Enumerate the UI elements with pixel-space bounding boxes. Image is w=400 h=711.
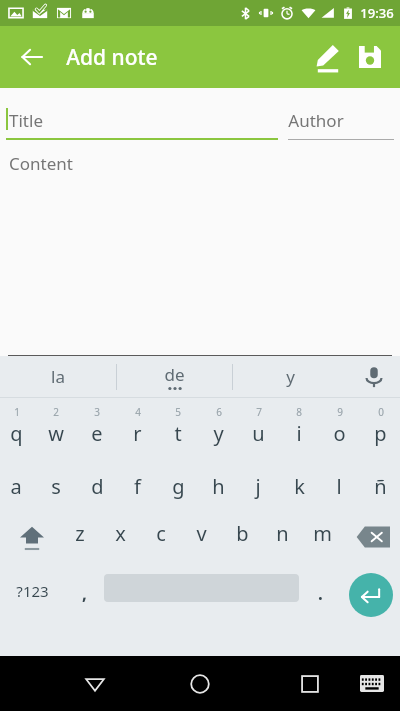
button[interactable]: Home — [175, 659, 225, 709]
staticText: o — [333, 420, 346, 447]
button[interactable]: Voice input — [348, 356, 400, 397]
staticText: ?123 — [16, 581, 49, 601]
staticText: x — [115, 520, 126, 547]
staticText: w — [48, 420, 64, 447]
staticText: t — [174, 420, 182, 447]
staticText: c — [156, 520, 166, 547]
button[interactable]: j — [238, 453, 278, 508]
button[interactable]: 0 — [360, 398, 400, 453]
staticText: z — [75, 520, 85, 547]
staticText: 3 — [94, 405, 100, 419]
button[interactable]: c — [141, 508, 181, 566]
staticText: , — [82, 582, 87, 605]
button[interactable]: Recents — [285, 656, 335, 711]
button[interactable]: h — [198, 453, 238, 508]
staticText: 1 — [14, 405, 20, 419]
button[interactable]: Back — [70, 656, 120, 711]
button[interactable]: ?123 — [4, 566, 60, 626]
button[interactable]: b — [222, 508, 262, 566]
staticText: 2 — [53, 405, 59, 419]
button[interactable]: a — [0, 453, 36, 508]
button[interactable]: Shift — [8, 508, 56, 566]
button[interactable]: d — [77, 453, 117, 508]
staticText: 9 — [337, 405, 343, 419]
button[interactable]: Author — [288, 100, 394, 140]
button[interactable]: ñ — [360, 453, 400, 508]
button[interactable]: 9 — [319, 398, 359, 453]
staticText: u — [252, 420, 265, 447]
staticText: e — [91, 420, 103, 447]
staticText: 7 — [256, 405, 262, 419]
staticText: k — [294, 473, 305, 500]
staticText: m — [313, 520, 332, 547]
button[interactable]: l — [319, 453, 359, 508]
button[interactable]: n — [262, 508, 302, 566]
staticText: q — [10, 420, 23, 447]
button[interactable]: m — [302, 508, 342, 566]
staticText: y — [213, 420, 224, 447]
staticText: h — [212, 473, 225, 500]
button[interactable]: Content — [6, 144, 400, 344]
staticText: 8 — [296, 405, 302, 419]
button[interactable]: 2 — [36, 398, 76, 453]
button[interactable]: f — [117, 453, 157, 508]
button[interactable]: 5 — [158, 398, 198, 453]
staticText: p — [374, 420, 387, 447]
staticText: n — [276, 520, 289, 547]
staticText: l — [336, 473, 342, 500]
button[interactable]: Keyboard — [350, 656, 394, 711]
button[interactable]: 4 — [117, 398, 157, 453]
button[interactable]: 1 — [0, 398, 36, 453]
button[interactable]: v — [181, 508, 221, 566]
staticText: 19:36 — [360, 4, 394, 22]
staticText: Add note — [66, 43, 158, 72]
button[interactable]: Back — [8, 33, 56, 81]
staticText: la — [51, 365, 65, 388]
button[interactable]: Enter — [349, 573, 393, 617]
button[interactable]: 3 — [77, 398, 117, 453]
button[interactable]: Delete — [350, 508, 396, 566]
staticText: Title — [9, 109, 43, 132]
staticText: g — [172, 473, 185, 500]
button[interactable]: . — [300, 566, 340, 626]
button[interactable]: , — [64, 566, 104, 626]
staticText: v — [196, 520, 207, 547]
staticText: . — [318, 582, 323, 605]
button[interactable]: 7 — [238, 398, 278, 453]
staticText: 5 — [175, 405, 181, 419]
button[interactable]: y — [233, 356, 348, 397]
button[interactable]: Title — [6, 100, 278, 140]
staticText: b — [236, 520, 249, 547]
staticText: Content — [9, 152, 73, 175]
button[interactable]: Save — [350, 37, 390, 77]
staticText: j — [255, 473, 261, 500]
staticText: ñ — [374, 473, 387, 500]
button[interactable]: s — [36, 453, 76, 508]
staticText: s — [51, 473, 61, 500]
staticText: de — [164, 363, 185, 386]
staticText: f — [134, 473, 141, 500]
button[interactable]: Edit — [306, 35, 350, 79]
button[interactable]: k — [279, 453, 319, 508]
staticText: 4 — [135, 405, 141, 419]
staticText: 0 — [378, 405, 384, 419]
staticText: d — [91, 473, 104, 500]
staticText: y — [286, 365, 295, 388]
button[interactable]: g — [158, 453, 198, 508]
staticText: r — [133, 420, 142, 447]
staticText: Author — [288, 109, 344, 132]
staticText: a — [10, 473, 22, 500]
button[interactable]: x — [100, 508, 140, 566]
staticText: i — [296, 420, 302, 447]
staticText: 6 — [216, 405, 222, 419]
button[interactable]: 8 — [279, 398, 319, 453]
button[interactable]: la — [0, 356, 116, 397]
button[interactable]: 6 — [198, 398, 238, 453]
button[interactable]: de — [117, 356, 232, 397]
button[interactable]: z — [60, 508, 100, 566]
